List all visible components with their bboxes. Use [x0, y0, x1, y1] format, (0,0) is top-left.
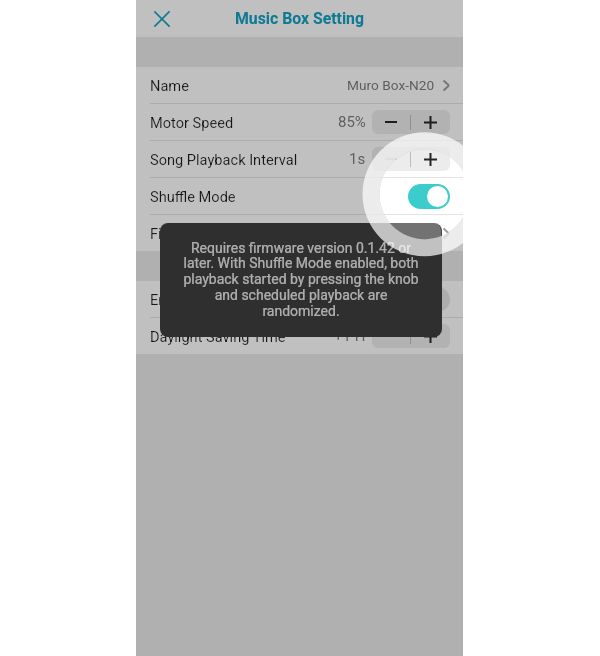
staticText: Enable Schedule [150, 291, 258, 308]
button[interactable]: Close [144, 1, 180, 37]
button[interactable]: Song Playback Interval [136, 141, 463, 177]
staticText: Song Playback Interval [150, 151, 298, 168]
staticText: 85% [338, 113, 366, 131]
button[interactable]: Decrease [372, 324, 410, 348]
staticText: Requires firmware version 0.1.42 or late… [176, 240, 426, 320]
button[interactable]: Decrease [372, 110, 410, 134]
button[interactable]: Enable Schedule [136, 281, 463, 317]
staticText: Music Box Setting [235, 9, 364, 28]
button[interactable]: Decrease [372, 147, 410, 171]
button[interactable]: Shuffle Mode [136, 178, 463, 214]
staticText: 1s [349, 150, 366, 168]
button[interactable]: Increase [411, 147, 450, 171]
button[interactable]: Motor Speed [136, 104, 463, 140]
staticText: Daylight Saving Time [150, 328, 286, 345]
staticText: Muro Box-N20 [347, 77, 435, 93]
staticText: Shuffle Mode [150, 188, 236, 205]
button[interactable]: Switch on [408, 184, 450, 209]
button[interactable]: Increase [411, 324, 450, 348]
staticText: Motor Speed [150, 114, 234, 131]
button[interactable]: Increase [411, 110, 450, 134]
staticText: +1 H [334, 327, 366, 345]
button[interactable]: Firmware Version [136, 215, 463, 251]
button[interactable]: Switch off [408, 287, 450, 312]
button[interactable]: Requires firmware version 0.1.42 or late… [160, 223, 442, 337]
staticText: Name [150, 77, 189, 94]
button[interactable]: Daylight Saving Time [136, 318, 463, 354]
staticText: Firmware Version [150, 225, 264, 242]
button[interactable]: Name [136, 67, 463, 103]
